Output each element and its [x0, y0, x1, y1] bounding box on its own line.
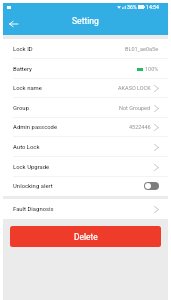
- button[interactable]: Battery: [3, 59, 168, 79]
- button[interactable]: Lock name: [3, 78, 168, 98]
- staticText: Lock ID: [13, 46, 33, 53]
- staticText: Lock name: [13, 85, 42, 92]
- staticText: Battery: [13, 66, 32, 73]
- staticText: Auto Lock: [13, 144, 40, 151]
- button[interactable]: Auto Lock: [3, 137, 168, 157]
- staticText: Fault Diagnosis: [13, 206, 54, 213]
- staticText: AKASO LOCK: [118, 85, 151, 91]
- button[interactable]: Admin passcode: [3, 117, 168, 137]
- staticText: Admin passcode: [13, 124, 58, 131]
- button[interactable]: Back: [4, 14, 22, 33]
- staticText: Not Grouped: [119, 105, 151, 111]
- button[interactable]: Unlocking alert: [3, 176, 168, 196]
- staticText: 36%: [127, 4, 137, 10]
- staticText: Unlocking alert: [13, 183, 53, 190]
- button[interactable]: Group: [3, 98, 168, 118]
- staticText: Lock Upgrade: [13, 164, 50, 171]
- staticText: Group: [13, 105, 29, 112]
- staticText: 4522446: [129, 124, 151, 130]
- staticText: Setting: [72, 16, 99, 26]
- staticText: 14:54: [146, 4, 159, 10]
- button[interactable]: Unlocking alert toggle: [144, 182, 159, 190]
- button[interactable]: Lock ID: [3, 39, 168, 59]
- button[interactable]: Fault Diagnosis: [3, 199, 168, 219]
- button[interactable]: Lock Upgrade: [3, 157, 168, 177]
- staticText: BL01_ae0a5e: [125, 46, 159, 52]
- button[interactable]: Delete: [10, 226, 161, 247]
- staticText: 100%: [145, 66, 159, 72]
- staticText: Delete: [74, 232, 98, 242]
